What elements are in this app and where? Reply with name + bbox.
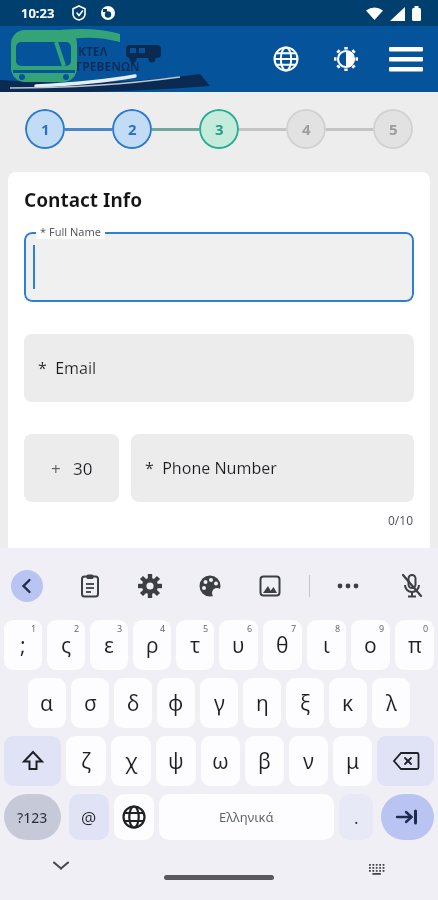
button[interactable]: [326, 39, 366, 79]
button[interactable]: [130, 566, 170, 606]
staticText: 10:23: [21, 4, 55, 22]
staticText: υ: [232, 631, 245, 660]
button[interactable]: π: [395, 620, 434, 670]
button[interactable]: [4, 736, 61, 786]
staticText: α: [40, 689, 54, 718]
staticText: λ: [386, 689, 397, 718]
staticText: 0: [423, 622, 429, 634]
staticText: Contact Info: [24, 187, 143, 213]
button[interactable]: Ελληνικά: [159, 794, 334, 840]
staticText: ;: [20, 631, 26, 660]
button[interactable]: ζ: [66, 736, 106, 786]
button[interactable]: ?123: [4, 794, 61, 840]
button[interactable]: κ: [329, 678, 367, 728]
button[interactable]: υ: [219, 620, 258, 670]
button[interactable]: [250, 566, 290, 606]
button[interactable]: 1: [25, 109, 65, 149]
staticText: 3: [215, 119, 224, 139]
button[interactable]: @: [69, 794, 109, 840]
staticText: τ: [190, 631, 201, 660]
staticText: @: [81, 806, 97, 829]
staticText: 3: [117, 622, 123, 634]
button[interactable]: ε: [90, 620, 128, 670]
staticText: θ: [276, 631, 289, 660]
staticText: η: [256, 689, 269, 718]
button[interactable]: χ: [111, 736, 151, 786]
button[interactable]: ;: [4, 620, 42, 670]
staticText: ν: [303, 747, 314, 776]
staticText: * Phone Number: [145, 457, 277, 479]
button[interactable]: 4: [286, 109, 326, 149]
button[interactable]: [114, 794, 154, 840]
button[interactable]: 3: [199, 109, 239, 149]
staticText: ι: [323, 631, 330, 660]
staticText: ΓΡΕΒΕΝΩΝ: [76, 58, 140, 74]
button[interactable]: ν: [289, 736, 328, 786]
button[interactable]: [44, 852, 78, 878]
button[interactable]: α: [28, 678, 66, 728]
button[interactable]: ρ: [133, 620, 171, 670]
staticText: ε: [104, 631, 114, 660]
button[interactable]: [190, 566, 230, 606]
staticText: γ: [214, 689, 225, 718]
button[interactable]: γ: [200, 678, 238, 728]
staticText: 5: [203, 622, 209, 634]
staticText: 0/10: [388, 512, 414, 528]
button[interactable]: σ: [71, 678, 109, 728]
staticText: 1: [41, 119, 50, 139]
button[interactable]: [24, 232, 414, 302]
button[interactable]: φ: [157, 678, 195, 728]
button[interactable]: +: [24, 434, 119, 502]
staticText: 6: [247, 622, 253, 634]
button[interactable]: ω: [201, 736, 240, 786]
staticText: φ: [168, 689, 184, 718]
button[interactable]: θ: [263, 620, 302, 670]
button[interactable]: * Email: [24, 334, 414, 402]
staticText: χ: [125, 747, 138, 776]
staticText: Ελληνικά: [219, 808, 274, 826]
staticText: β: [258, 747, 271, 776]
staticText: 7: [291, 622, 297, 634]
staticText: 2: [74, 622, 80, 634]
button[interactable]: ο: [351, 620, 390, 670]
button[interactable]: [384, 37, 428, 81]
staticText: .: [354, 806, 359, 829]
button[interactable]: [11, 570, 43, 602]
staticText: 30: [73, 457, 93, 480]
button[interactable]: [360, 856, 394, 882]
staticText: ξ: [300, 689, 311, 718]
button[interactable]: ς: [47, 620, 85, 670]
button[interactable]: [392, 566, 432, 606]
staticText: ψ: [168, 747, 184, 776]
button[interactable]: ξ: [286, 678, 324, 728]
staticText: ζ: [81, 747, 91, 776]
button[interactable]: [70, 566, 110, 606]
staticText: κ: [342, 689, 354, 718]
button[interactable]: * Phone Number: [131, 434, 414, 502]
staticText: ?123: [17, 808, 48, 827]
button[interactable]: [377, 736, 434, 786]
button[interactable]: η: [243, 678, 281, 728]
button[interactable]: τ: [176, 620, 214, 670]
staticText: 2: [128, 119, 137, 139]
staticText: 4: [160, 622, 166, 634]
button[interactable]: .: [339, 794, 373, 840]
button[interactable]: [381, 794, 434, 840]
staticText: 1: [31, 622, 37, 634]
button[interactable]: 5: [373, 109, 413, 149]
staticText: ω: [212, 747, 229, 776]
button[interactable]: [328, 566, 368, 606]
button[interactable]: [266, 39, 306, 79]
staticText: +: [51, 457, 61, 480]
button[interactable]: μ: [333, 736, 372, 786]
button[interactable]: δ: [114, 678, 152, 728]
staticText: ΚΤΕΛ: [78, 43, 108, 59]
button[interactable]: β: [245, 736, 284, 786]
button[interactable]: λ: [372, 678, 410, 728]
staticText: δ: [127, 689, 140, 718]
staticText: σ: [84, 689, 97, 718]
button[interactable]: ι: [307, 620, 346, 670]
button[interactable]: ψ: [156, 736, 196, 786]
button[interactable]: 2: [112, 109, 152, 149]
staticText: 9: [379, 622, 385, 634]
